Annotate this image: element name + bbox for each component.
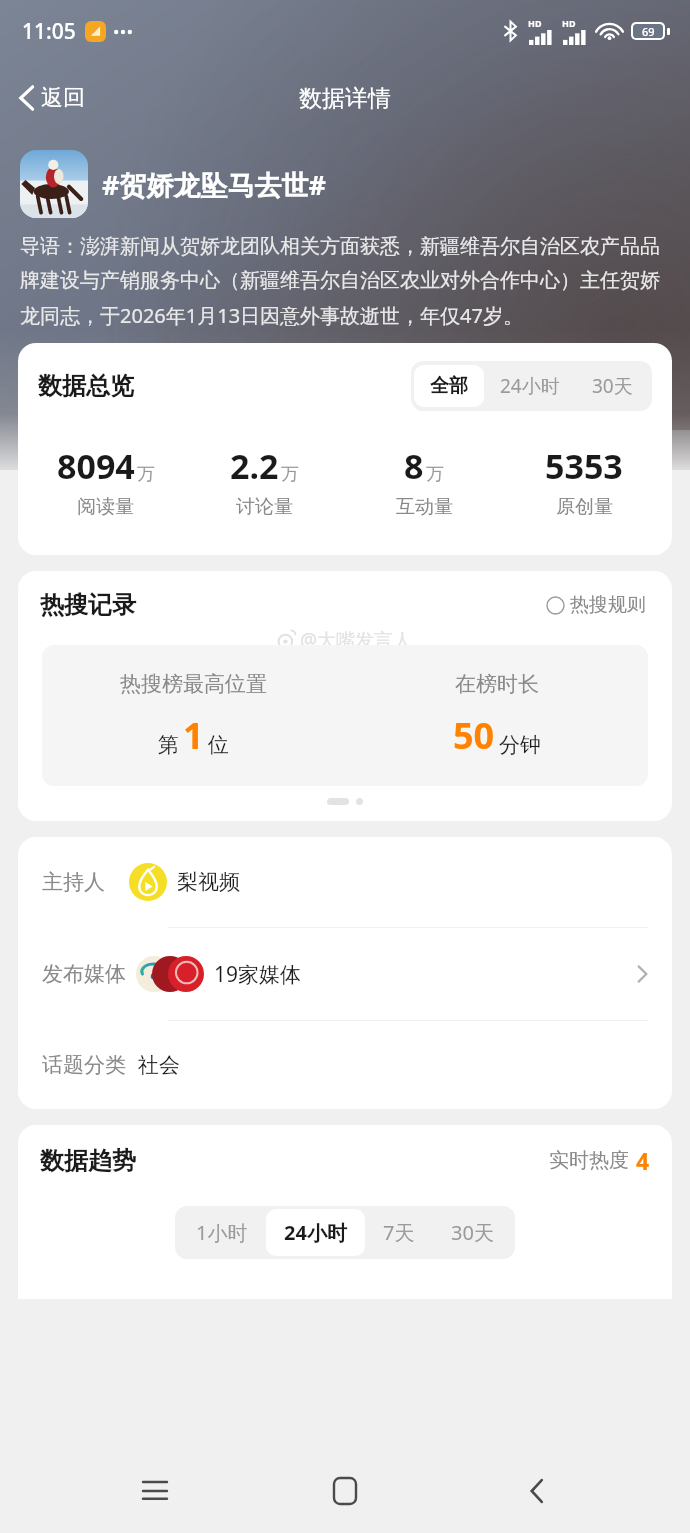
staticText: 万 [426,463,444,486]
staticText: 7天 [383,1219,415,1246]
staticText: 返回 [41,84,85,112]
button[interactable]: 8 [344,443,504,519]
staticText: 8094 [57,443,135,489]
button[interactable]: 5353 [504,443,664,519]
staticText: 24小时 [284,1219,347,1246]
staticText: 热搜榜最高位置 [120,671,267,697]
button[interactable]: 全部 [414,365,484,407]
button[interactable]: Topic image [20,150,88,218]
button[interactable]: 热搜规则 [542,589,650,621]
staticText: 2.2 [230,443,279,489]
staticText: 互动量 [396,495,453,519]
staticText: 实时热度 [549,1148,629,1173]
button[interactable]: 24小时 [266,1209,365,1256]
staticText: 24小时 [500,373,560,399]
staticText: 热搜记录 [40,590,136,620]
staticText: 5353 [545,443,623,489]
button[interactable]: 返回 [0,76,99,120]
staticText: HD [562,17,576,29]
staticText: 原创量 [556,495,613,519]
button[interactable]: 24小时 [484,364,576,408]
button[interactable]: 8094 [26,443,185,519]
staticText: 阅读量 [77,495,134,519]
staticText: 第 [158,732,179,758]
staticText: 梨视频 [177,869,240,895]
button[interactable]: 主持人 [18,837,672,927]
staticText: @大嘴发言人 [300,627,413,653]
staticText: 30天 [592,373,633,399]
staticText: 话题分类 [42,1052,126,1078]
staticText: 万 [137,463,155,486]
button[interactable]: 30天 [433,1209,512,1256]
staticText: #贺娇龙坠马去世# [102,166,326,203]
staticText: 4 [636,1145,650,1176]
staticText: 分钟 [499,732,541,758]
staticText: 热搜规则 [570,593,646,617]
staticText: 11:05 [22,17,76,46]
staticText: 全部 [430,374,468,398]
staticText: 在榜时长 [455,671,539,697]
button[interactable]: 2.2 [185,443,344,519]
staticText: 导语：澎湃新闻从贺娇龙团队相关方面获悉，新疆维吾尔自治区农产品品牌建设与产销服务… [20,234,670,329]
staticText: 万 [281,463,299,486]
staticText: HD [528,17,542,29]
button[interactable]: 30天 [576,364,649,408]
staticText: 讨论量 [236,495,293,519]
button[interactable]: 7天 [365,1209,433,1256]
staticText: 1小时 [196,1219,248,1246]
button[interactable]: 发布媒体 [18,928,672,1020]
staticText: 数据详情 [299,84,391,113]
button[interactable]: 实时热度 [549,1145,650,1176]
staticText: 社会 [138,1052,180,1078]
button[interactable]: Home [309,1455,381,1527]
button[interactable]: 1小时 [178,1209,266,1256]
staticText: 主持人 [42,869,105,895]
staticText: 数据趋势 [40,1146,136,1176]
button[interactable]: Recent apps [119,1455,191,1527]
button[interactable]: 热搜榜最高位置 [42,645,648,786]
button[interactable]: Back [500,1455,572,1527]
staticText: 69 [642,24,655,38]
staticText: 50 [453,711,495,760]
staticText: 30天 [451,1219,494,1246]
staticText: 发布媒体 [42,961,126,987]
staticText: 8 [404,443,424,489]
staticText: 位 [208,732,229,758]
staticText: 1 [183,711,204,760]
staticText: 19家媒体 [214,960,302,989]
button[interactable]: 话题分类 [18,1021,672,1109]
staticText: 数据总览 [38,371,134,401]
